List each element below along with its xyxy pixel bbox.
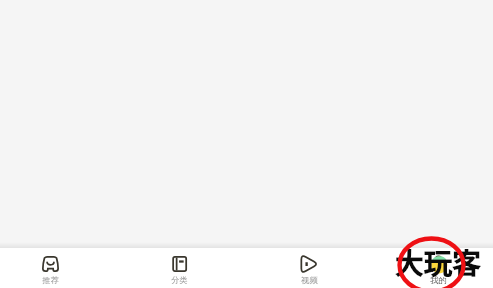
button[interactable]: Recommend bbox=[20, 248, 80, 288]
staticText: 我的 bbox=[430, 275, 447, 285]
staticText: 大玩客 bbox=[395, 241, 482, 283]
button[interactable]: Mine bbox=[408, 248, 468, 288]
staticText: 推荐 bbox=[42, 275, 59, 285]
staticText: 视频 bbox=[301, 275, 318, 285]
staticText: 分类 bbox=[171, 275, 188, 285]
button[interactable]: Categories bbox=[149, 248, 209, 288]
button[interactable]: Video bbox=[279, 248, 339, 288]
